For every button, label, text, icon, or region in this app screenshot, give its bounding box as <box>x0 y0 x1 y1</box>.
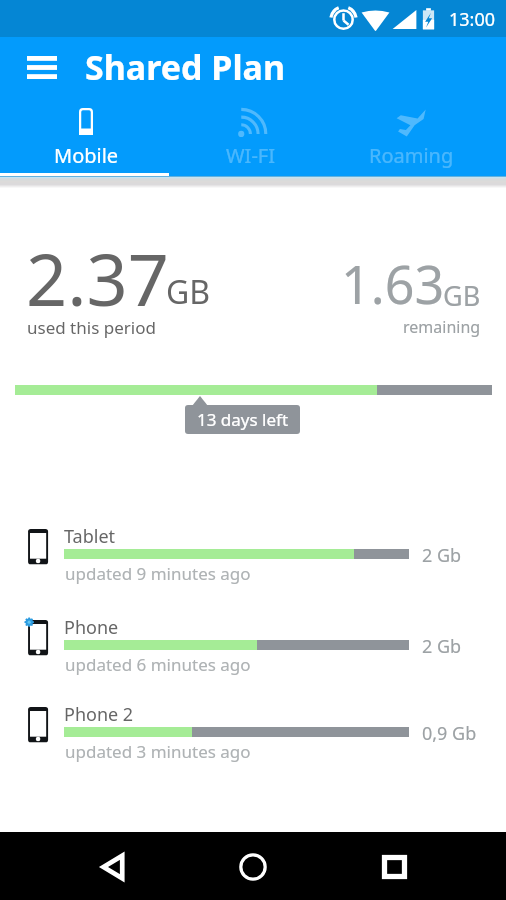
button[interactable]: Mobile <box>0 98 169 177</box>
staticText: Mobile <box>54 142 119 169</box>
button[interactable]: WI-FI <box>169 98 338 177</box>
button[interactable]: Phone 2 <box>0 699 506 759</box>
staticText: updated 6 minutes ago <box>65 653 251 676</box>
staticText: 2 Gb <box>422 543 462 568</box>
button[interactable]: Home <box>227 832 279 900</box>
staticText: Phone 2 <box>64 702 134 727</box>
staticText: used this period <box>27 316 156 339</box>
button[interactable]: Tablet <box>0 521 506 581</box>
button[interactable]: Roaming <box>338 98 506 177</box>
button[interactable]: Back <box>87 832 139 900</box>
button[interactable]: Open navigation menu <box>17 45 67 89</box>
button[interactable]: Recent apps <box>368 832 420 900</box>
staticText: GB <box>443 277 481 314</box>
staticText: 1.63 <box>341 248 445 319</box>
staticText: Phone <box>64 615 119 640</box>
button[interactable]: Phone <box>0 612 506 672</box>
staticText: remaining <box>403 316 481 338</box>
staticText: GB <box>166 270 211 314</box>
staticText: 13 days left <box>197 408 289 431</box>
staticText: updated 3 minutes ago <box>65 740 251 763</box>
staticText: Shared Plan <box>85 44 286 90</box>
staticText: 2 Gb <box>422 634 462 659</box>
staticText: WI-FI <box>226 142 275 169</box>
staticText: updated 9 minutes ago <box>65 562 251 585</box>
staticText: 2.37 <box>26 229 169 327</box>
staticText: 13:00 <box>449 7 496 32</box>
staticText: Tablet <box>64 524 116 549</box>
staticText: Roaming <box>369 142 454 169</box>
staticText: 0,9 Gb <box>422 721 477 746</box>
